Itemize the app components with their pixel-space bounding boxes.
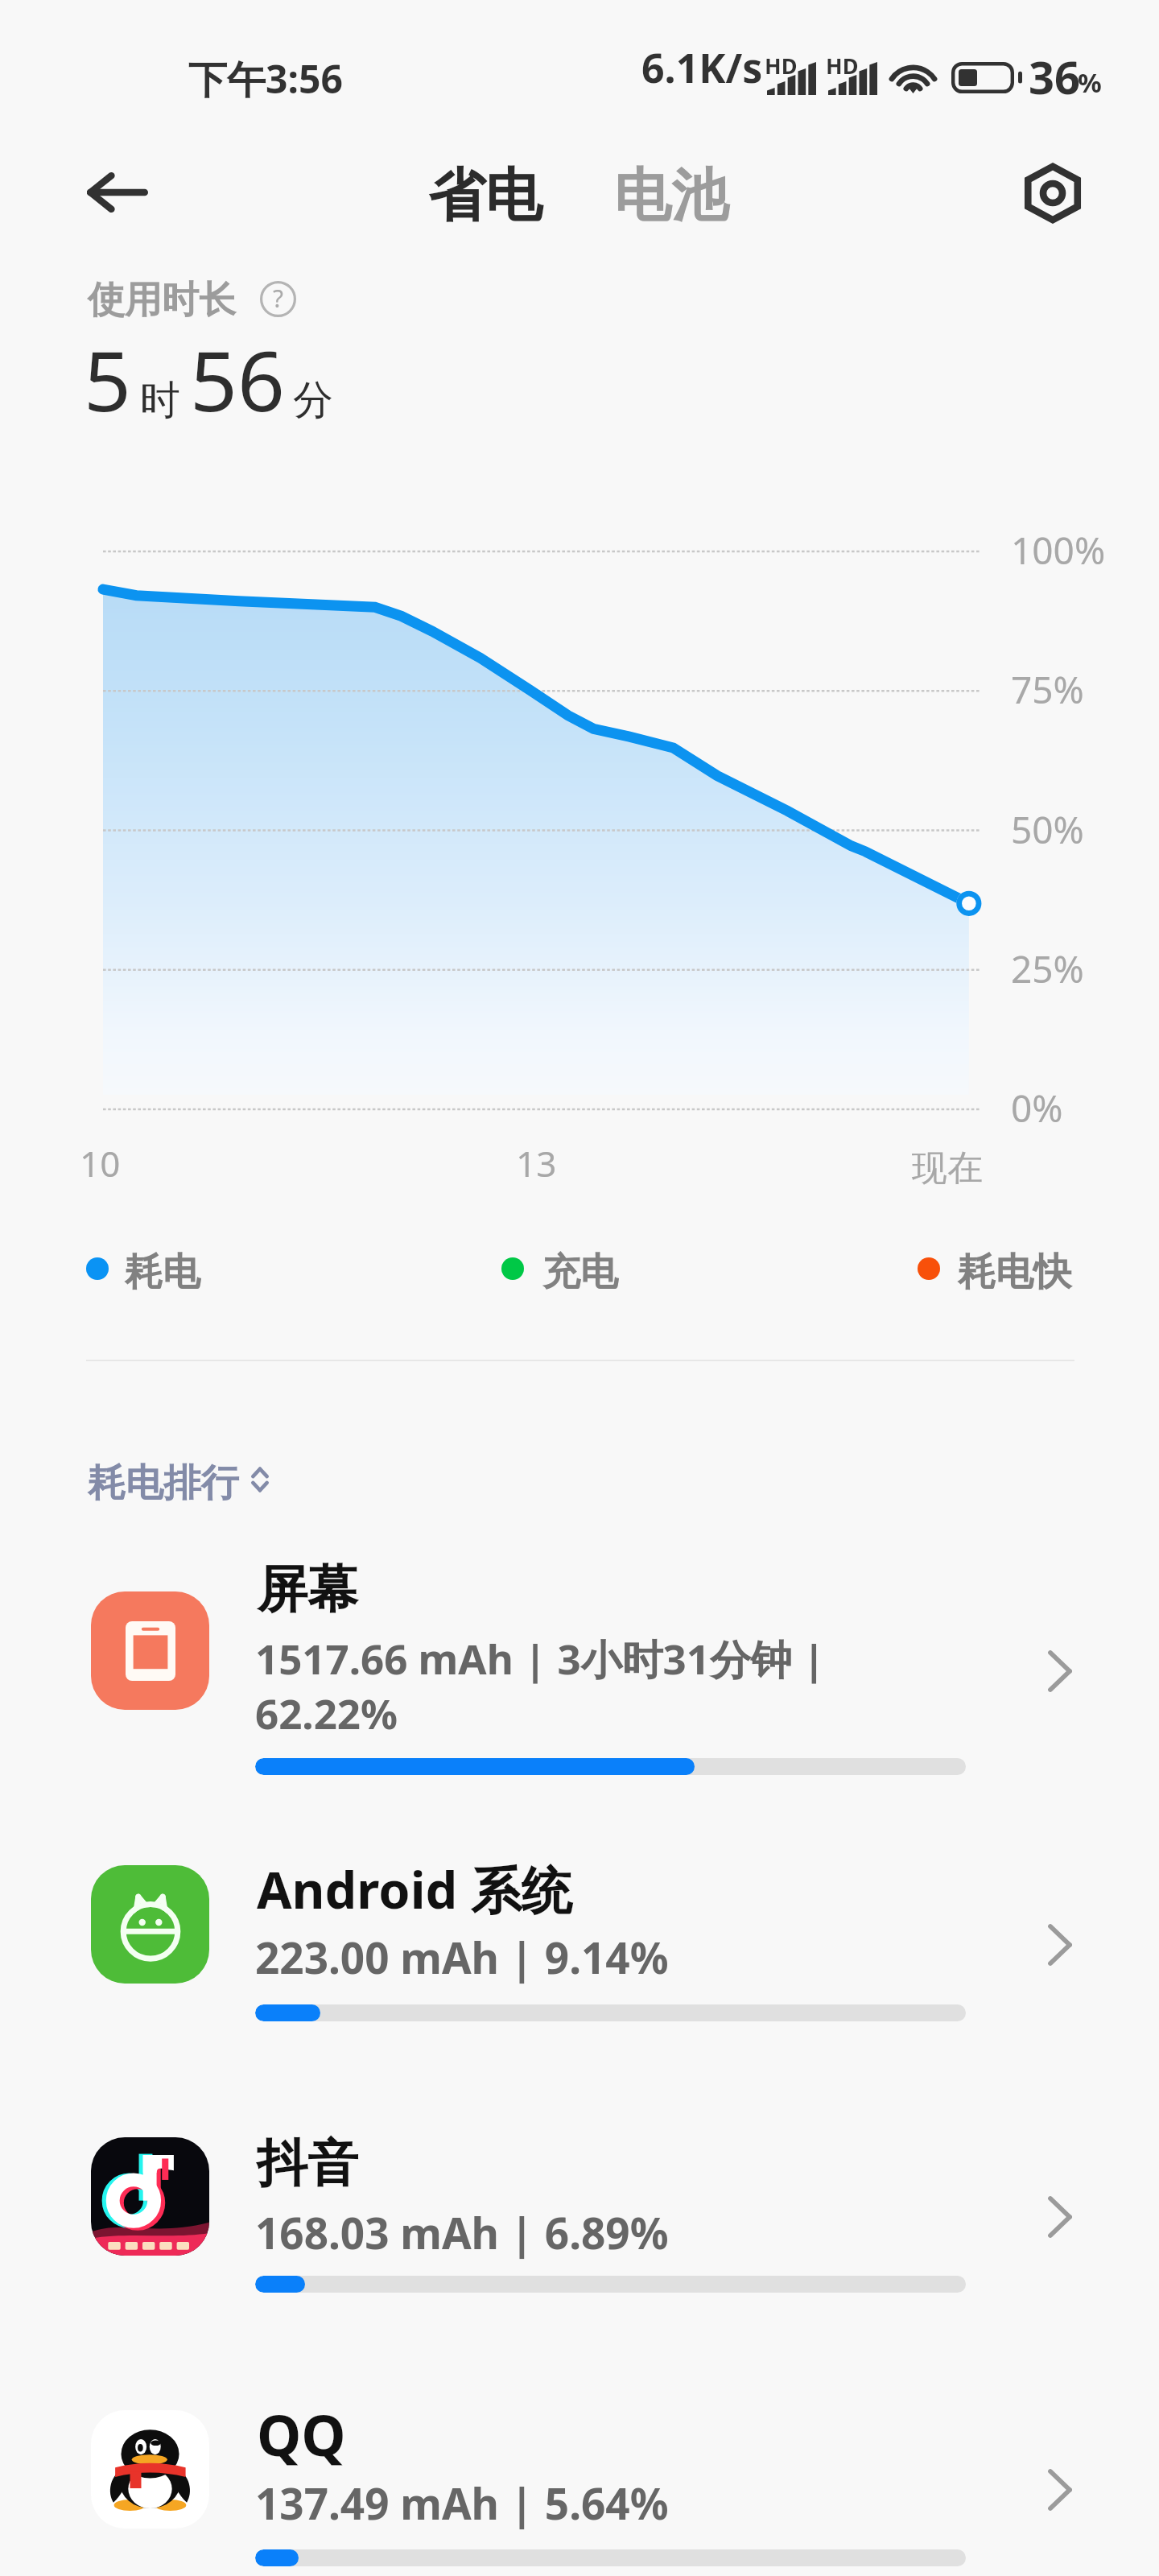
staticText: 36 <box>1029 46 1081 107</box>
button[interactable] <box>909 1246 1079 1294</box>
staticText: 13 <box>516 1139 557 1187</box>
staticText: 耗电排行 <box>88 1459 239 1507</box>
button[interactable]: Open details <box>1010 1881 1111 2010</box>
staticText: 25% <box>1011 943 1084 994</box>
staticText: 抖音 <box>257 2132 358 2195</box>
button[interactable] <box>493 1246 626 1294</box>
staticText: 6.1K/s <box>641 40 763 95</box>
staticText: 223.00 mAh | 9.14% <box>255 1928 669 1986</box>
staticText: 屏幕 <box>257 1558 358 1621</box>
staticText: QQ <box>257 2396 346 2472</box>
staticText: 1517.66 mAh | 3小时31分钟 | <box>255 1630 826 1686</box>
button[interactable] <box>0 2093 1159 2348</box>
button[interactable]: Settings <box>985 142 1120 244</box>
staticText: 分 <box>293 375 333 426</box>
button[interactable]: Open details <box>1010 2153 1111 2282</box>
staticText: 50% <box>1011 804 1084 855</box>
staticText: 耗电快 <box>958 1249 1071 1296</box>
staticText: 168.03 mAh | 6.89% <box>255 2203 669 2261</box>
staticText: HD <box>765 51 798 80</box>
staticText: 使用时长 <box>88 277 236 324</box>
staticText: 0% <box>1011 1083 1063 1133</box>
staticText: 下午3:56 <box>188 52 343 105</box>
button[interactable] <box>80 1453 282 1503</box>
staticText: 100% <box>1011 525 1106 576</box>
staticText: 137.49 mAh | 5.64% <box>255 2474 669 2532</box>
button[interactable] <box>78 1246 208 1294</box>
staticText: ? <box>273 282 284 315</box>
staticText: 5 <box>84 323 131 436</box>
staticText: HD <box>826 51 859 80</box>
staticText: 充电 <box>542 1249 618 1296</box>
staticText: 电池 <box>614 160 728 232</box>
button[interactable]: Back <box>45 142 190 243</box>
button[interactable] <box>0 1821 1159 2077</box>
staticText: 56 <box>190 323 285 436</box>
staticText: 耗电 <box>125 1249 200 1296</box>
button[interactable] <box>0 1547 1159 1831</box>
staticText: 75% <box>1011 664 1084 715</box>
button[interactable] <box>0 2366 1159 2576</box>
button[interactable]: Help <box>260 281 296 317</box>
staticText: 省电 <box>428 160 542 232</box>
staticText: % <box>1078 64 1102 101</box>
button[interactable]: Open details <box>1010 2426 1111 2555</box>
staticText: 62.22% <box>255 1685 398 1740</box>
button[interactable]: 省电 <box>412 149 559 244</box>
button[interactable]: 电池 <box>598 149 744 244</box>
staticText: Android 系统 <box>257 1855 572 1924</box>
staticText: 10 <box>80 1139 121 1187</box>
staticText: 时 <box>140 375 180 426</box>
button[interactable]: Open details <box>1010 1608 1111 1736</box>
staticText: 现在 <box>912 1146 983 1191</box>
